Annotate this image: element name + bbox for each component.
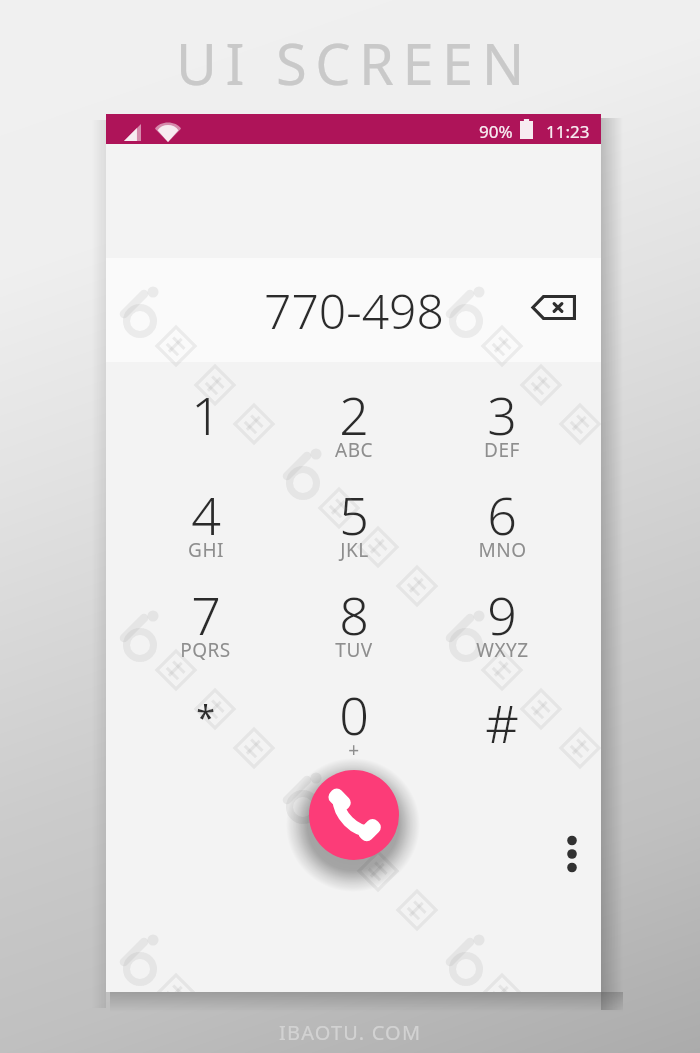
staticText: * [196, 694, 215, 740]
staticText: IBAOTU. COM [279, 1019, 422, 1046]
button[interactable]: 1 [131, 381, 280, 481]
button[interactable]: Call [309, 770, 399, 860]
button[interactable]: 8 [280, 581, 428, 681]
button[interactable]: 7 [131, 581, 280, 681]
button[interactable]: 2 [280, 381, 428, 481]
staticText: + [348, 737, 360, 763]
staticText: MNO [478, 537, 527, 563]
staticText: 1 [191, 379, 221, 450]
button[interactable]: 9 [428, 581, 576, 681]
staticText: 90% [479, 120, 513, 143]
staticText: WXYZ [476, 637, 529, 663]
button[interactable]: # [428, 681, 576, 781]
staticText: DEF [484, 437, 520, 463]
button[interactable]: Backspace [520, 274, 586, 340]
staticText: # [485, 687, 519, 758]
staticText: GHI [188, 537, 224, 563]
staticText: 7 [191, 579, 221, 650]
button[interactable]: 5 [280, 481, 428, 581]
button[interactable]: 0 [280, 681, 428, 781]
button[interactable]: More options [542, 824, 602, 884]
staticText: 11:23 [546, 120, 590, 143]
staticText: TUV [335, 637, 373, 663]
staticText: 2 [339, 379, 369, 450]
staticText: 3 [487, 379, 517, 450]
staticText: 0 [339, 679, 369, 750]
staticText: 5 [339, 479, 369, 550]
staticText: 4 [191, 479, 221, 550]
staticText: UI SCREEN [176, 25, 533, 101]
staticText: 8 [339, 579, 369, 650]
button[interactable]: 4 [131, 481, 280, 581]
staticText: 9 [487, 579, 517, 650]
staticText: JKL [340, 537, 369, 563]
staticText: 6 [487, 479, 517, 550]
button[interactable]: 6 [428, 481, 576, 581]
staticText: PQRS [180, 637, 231, 663]
button[interactable]: * [131, 681, 280, 781]
button[interactable]: 3 [428, 381, 576, 481]
staticText: 770-498 [264, 278, 444, 343]
staticText: ABC [335, 437, 373, 463]
